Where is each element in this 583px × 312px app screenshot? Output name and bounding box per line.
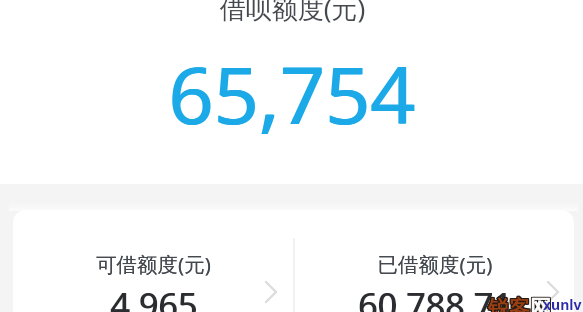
staticText: 客: [509, 296, 530, 312]
staticText: 借呗额度(元): [1, 0, 583, 26]
staticText: 锐: [489, 294, 510, 312]
staticText: 锐: [488, 294, 509, 312]
staticText: 客: [510, 294, 531, 312]
staticText: 客: [508, 296, 529, 312]
staticText: 客: [510, 295, 531, 312]
staticText: 网: [531, 294, 552, 312]
staticText: 锐: [489, 295, 510, 312]
staticText: 客: [508, 294, 529, 312]
staticText: 可借额度(元): [13, 250, 294, 278]
button[interactable]: 已借额度(元): [294, 210, 574, 312]
other: Open details: [539, 278, 567, 306]
staticText: 4,965: [13, 282, 294, 312]
staticText: 客: [509, 295, 530, 312]
staticText: 65,754: [1, 40, 583, 148]
staticText: 网: [530, 294, 551, 312]
staticText: 网: [531, 296, 552, 312]
staticText: 锐: [488, 296, 509, 312]
staticText: 60,788.71: [296, 282, 574, 312]
staticText: 锐: [487, 295, 508, 312]
staticText: 已借额度(元): [296, 250, 574, 278]
staticText: xunlv: [543, 295, 582, 312]
staticText: 已借额度(元): [296, 250, 574, 278]
staticText: 客: [508, 295, 529, 312]
staticText: 锐: [488, 295, 509, 312]
staticText: 网: [529, 296, 550, 312]
staticText: 锐: [489, 296, 510, 312]
staticText: 客: [510, 296, 531, 312]
staticText: 4,965: [14, 282, 295, 312]
button[interactable]: 可借额度(元): [13, 210, 294, 312]
other: Open details: [257, 278, 285, 306]
staticText: 网: [530, 295, 551, 312]
staticText: 60,788.71: [297, 282, 575, 312]
staticText: 锐: [487, 296, 508, 312]
staticText: 网: [529, 294, 550, 312]
staticText: 65,754: [0, 40, 583, 148]
staticText: 锐: [487, 294, 508, 312]
staticText: 可借额度(元): [13, 250, 294, 278]
staticText: 网: [531, 295, 552, 312]
staticText: 网: [530, 296, 551, 312]
staticText: 客: [509, 294, 530, 312]
staticText: 网: [529, 295, 550, 312]
